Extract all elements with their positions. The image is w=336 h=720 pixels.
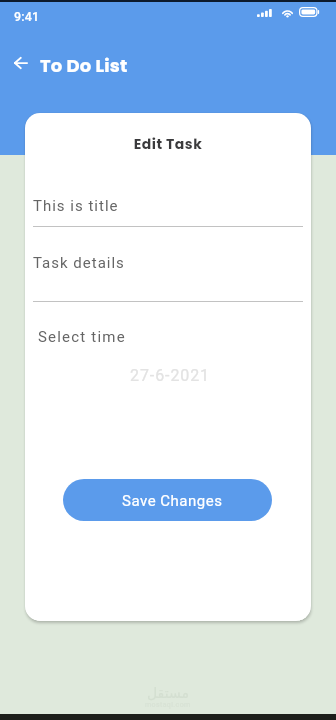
button[interactable]: Save Changes <box>63 479 272 521</box>
staticText: 9:41 <box>14 9 40 24</box>
staticText: This is title <box>33 197 119 215</box>
staticText: Task details <box>33 254 125 272</box>
button[interactable]: Select time <box>33 318 303 393</box>
button[interactable]: This is title <box>33 188 303 227</box>
button[interactable]: Back <box>7 49 35 77</box>
staticText: Save Changes <box>122 492 223 510</box>
staticText: 27-6-2021 <box>35 366 305 385</box>
staticText: To Do List <box>40 53 128 78</box>
staticText: Edit Task <box>25 134 311 154</box>
staticText: مستقل <box>147 685 189 701</box>
staticText: Select time <box>38 328 126 346</box>
button[interactable]: Task details <box>33 245 303 302</box>
